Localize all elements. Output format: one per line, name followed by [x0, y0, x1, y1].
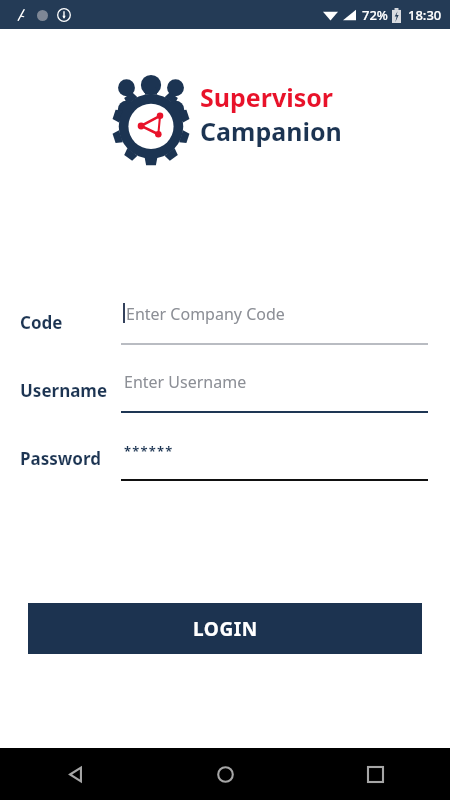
- staticText: Username: [20, 379, 108, 402]
- button[interactable]: LOGIN: [28, 603, 422, 654]
- staticText: ******: [124, 442, 174, 460]
- button[interactable]: Enter Company Code: [121, 299, 428, 345]
- staticText: Enter Username: [124, 371, 247, 393]
- button[interactable]: Home: [150, 748, 300, 800]
- staticText: 72%: [362, 6, 388, 24]
- staticText: 18:30: [408, 6, 442, 24]
- staticText: Password: [20, 447, 101, 470]
- button[interactable]: Back: [0, 748, 150, 800]
- staticText: Code: [20, 311, 63, 334]
- button[interactable]: Enter Username: [121, 367, 428, 413]
- staticText: Supervisor: [200, 80, 334, 114]
- staticText: LOGIN: [193, 616, 258, 642]
- button[interactable]: ******: [121, 435, 428, 481]
- button[interactable]: Recent apps: [300, 748, 450, 800]
- staticText: Campanion: [200, 114, 342, 148]
- staticText: Enter Company Code: [126, 303, 285, 325]
